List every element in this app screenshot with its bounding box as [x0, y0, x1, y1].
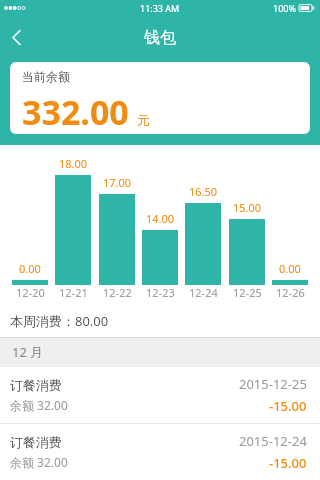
staticText: 100% [273, 2, 296, 14]
staticText: 钱包 [144, 28, 176, 48]
staticText: 12-21 [59, 285, 88, 300]
staticText: 12-23 [146, 285, 175, 300]
staticText: 11:33 AM [140, 2, 180, 14]
staticText: -15.00 [269, 454, 307, 472]
staticText: 12-22 [103, 285, 132, 300]
staticText: 332.00 [22, 89, 129, 134]
staticText: 0.00 [279, 261, 301, 276]
staticText: 余额 32.00 [10, 397, 68, 413]
button[interactable] [0, 21, 34, 55]
staticText: 14.00 [146, 211, 175, 226]
staticText: 17.00 [103, 175, 132, 190]
staticText: 12-25 [233, 285, 262, 300]
staticText: 本周消费：80.00 [10, 312, 109, 330]
button[interactable]: 当前余额 [10, 62, 310, 134]
staticText: 订餐消费 [10, 434, 62, 450]
staticText: 0.00 [19, 261, 41, 276]
staticText: 15.00 [233, 200, 262, 215]
staticText: -15.00 [269, 397, 307, 415]
staticText: 18.00 [59, 156, 88, 171]
button[interactable]: 订餐消费 [0, 367, 320, 423]
staticText: 16.50 [189, 184, 218, 199]
staticText: 余额 32.00 [10, 454, 68, 470]
staticText: 2015-12-24 [239, 432, 307, 450]
staticText: 12-26 [276, 285, 305, 300]
staticText: 当前余额 [22, 69, 70, 84]
staticText: 元 [137, 112, 150, 128]
staticText: 12 月 [12, 343, 44, 361]
staticText: 12-24 [189, 285, 218, 300]
staticText: 订餐消费 [10, 377, 62, 393]
staticText: 2015-12-25 [239, 375, 307, 393]
button[interactable]: 订餐消费 [0, 424, 320, 480]
staticText: 12-20 [16, 285, 45, 300]
